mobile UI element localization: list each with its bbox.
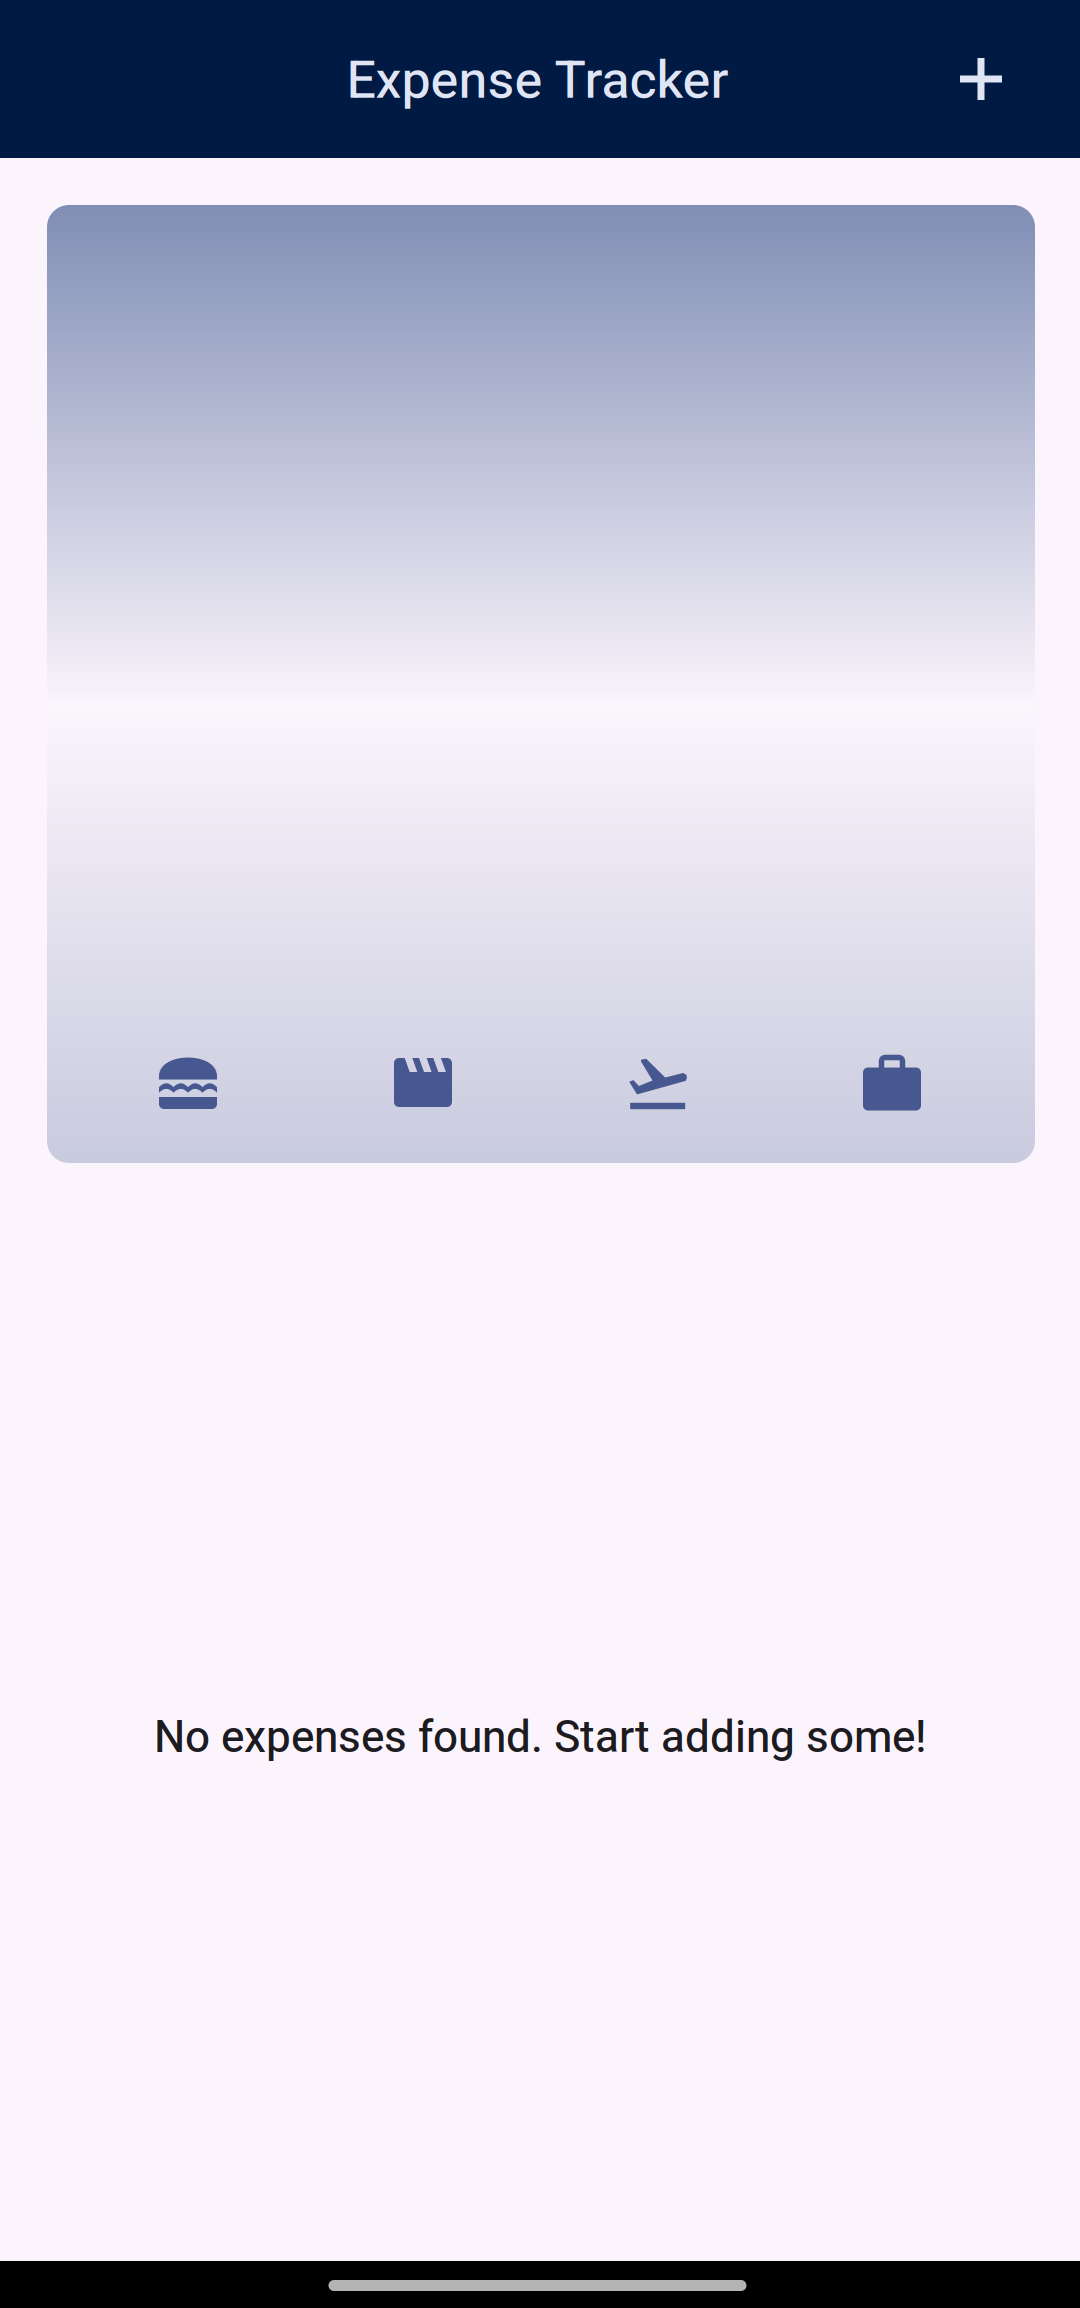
- button[interactable]: Work category: [862, 1056, 922, 1116]
- button[interactable]: Travel category: [628, 1056, 688, 1116]
- button[interactable]: Entertainment category: [393, 1056, 453, 1116]
- button[interactable]: Add expense: [933, 31, 1029, 127]
- staticText: No expenses found. Start adding some!: [154, 1711, 926, 1763]
- button[interactable]: Food category: [158, 1056, 218, 1116]
- staticText: Expense Tracker: [346, 49, 728, 110]
